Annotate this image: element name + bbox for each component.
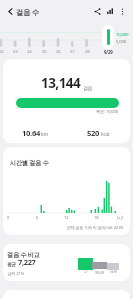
staticText: 26 [56, 48, 61, 54]
staticText: 520 [87, 128, 100, 138]
button[interactable]: More options [115, 4, 129, 18]
staticText: kcal [101, 131, 110, 138]
staticText: 25 [42, 48, 47, 54]
staticText: 9/29 [104, 49, 113, 55]
staticText: 12 [64, 215, 69, 220]
staticText: 0 [7, 215, 10, 220]
button[interactable] [102, 25, 114, 49]
staticText: 10,000 [116, 31, 129, 37]
staticText: 10.64 [22, 128, 40, 138]
staticText: 걸음 수 비교 [7, 250, 40, 258]
staticText: 27 [70, 48, 75, 54]
button[interactable]: Back [2, 3, 18, 19]
staticText: 23 [13, 48, 18, 54]
staticText: 전체 [110, 270, 117, 275]
staticText: 22 [0, 48, 4, 54]
staticText: 나 [84, 270, 88, 275]
staticText: 6 [36, 215, 39, 220]
staticText: 시간별 걸음 수 [10, 158, 49, 166]
staticText: 걸음 수 [16, 7, 39, 17]
button[interactable]: 걸음 수 비교 [3, 244, 130, 281]
button[interactable]: Trends [103, 4, 117, 18]
staticText: 목표: 10,000 [96, 109, 119, 115]
staticText: 5,000 [116, 38, 127, 44]
staticText: 전체 걸음, 마지막 업데이트 22:09 [67, 225, 124, 230]
staticText: 13,144 [41, 74, 81, 92]
staticText: 30-39 [95, 270, 104, 275]
staticText: 18 [94, 215, 99, 220]
staticText: 24 [27, 48, 32, 54]
staticText: 걸음 [83, 85, 93, 91]
staticText: 7,227 [18, 257, 36, 267]
button[interactable]: Share [90, 4, 104, 18]
staticText: 상위 21% [7, 270, 25, 276]
staticText: (시) [117, 215, 123, 220]
staticText: 평균 [7, 261, 17, 267]
staticText: km [41, 131, 48, 138]
staticText: 28 [85, 48, 90, 54]
